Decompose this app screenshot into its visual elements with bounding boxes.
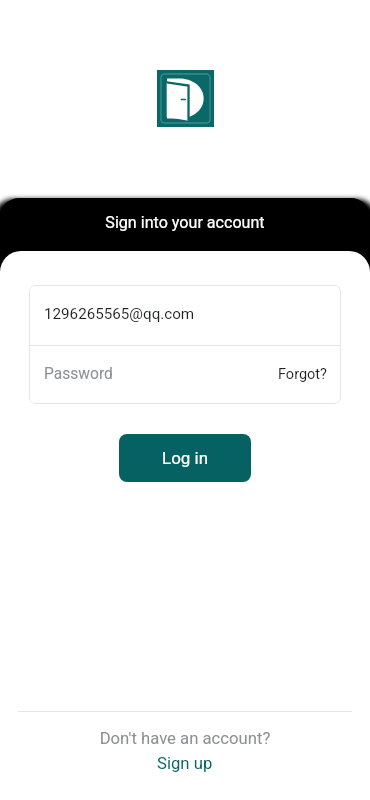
other: App logo	[157, 70, 214, 127]
button[interactable]: Forgot?	[278, 366, 327, 383]
staticText: Don't have an account?	[0, 729, 370, 749]
staticText: Sign into your account	[0, 213, 370, 232]
button[interactable]: Log in	[119, 434, 251, 482]
staticText: Log in	[162, 448, 209, 468]
button[interactable]: Password	[29, 346, 341, 404]
staticText: Sign up	[157, 754, 213, 774]
staticText: Forgot?	[278, 366, 327, 383]
button[interactable]: Sign up	[151, 752, 219, 776]
button[interactable]: 1296265565@qq.com	[29, 285, 341, 345]
staticText: 1296265565@qq.com	[44, 305, 195, 323]
staticText: Password	[44, 365, 113, 383]
